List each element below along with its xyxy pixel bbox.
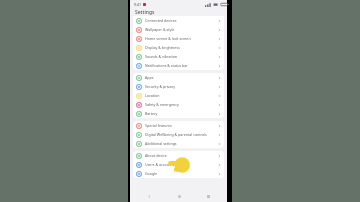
button[interactable]: Display & brightness (133, 43, 224, 52)
button[interactable]: Google (133, 169, 224, 178)
staticText: Additional settings (145, 141, 177, 146)
staticText: Sounds & vibration (145, 54, 178, 59)
staticText: Connected devices (145, 18, 177, 23)
button[interactable]: Notifications & status bar (133, 61, 224, 70)
button[interactable]: Wallpaper & style (133, 25, 224, 34)
button[interactable]: Connected devices (133, 16, 224, 25)
staticText: Apps (145, 75, 154, 80)
button[interactable]: Additional settings (133, 139, 224, 148)
button[interactable]: Sounds & vibration (133, 52, 224, 61)
button[interactable]: About device (133, 151, 224, 160)
staticText: 9:41 (134, 2, 141, 7)
staticText: Home screen & lock screen (145, 36, 191, 41)
button[interactable]: Location (133, 91, 224, 100)
staticText: Digital Wellbeing & parental controls (145, 132, 207, 137)
button[interactable]: Home screen & lock screen (133, 34, 224, 43)
staticText: Google (145, 171, 158, 176)
staticText: Wallpaper & style (145, 27, 175, 32)
button[interactable]: Safety & emergency (133, 100, 224, 109)
staticText: Safety & emergency (145, 102, 179, 107)
button[interactable]: Recent apps (197, 190, 219, 202)
button[interactable]: Users & accounts (133, 160, 224, 169)
button[interactable]: Security & privacy (133, 82, 224, 91)
button[interactable]: Home (168, 190, 190, 202)
button[interactable]: Special features (133, 121, 224, 130)
button[interactable]: Back (138, 190, 160, 202)
button[interactable]: Battery (133, 109, 224, 118)
staticText: Settings (135, 9, 155, 16)
staticText: Special features (145, 123, 172, 128)
staticText: Display & brightness (145, 45, 180, 50)
button[interactable]: Digital Wellbeing & parental controls (133, 130, 224, 139)
staticText: Location (145, 93, 160, 98)
staticText: Battery (145, 111, 158, 116)
button[interactable]: Apps (133, 73, 224, 82)
staticText: Security & privacy (145, 84, 176, 89)
staticText: About device (145, 153, 167, 158)
staticText: Notifications & status bar (145, 63, 188, 68)
staticText: Users & accounts (145, 162, 175, 167)
